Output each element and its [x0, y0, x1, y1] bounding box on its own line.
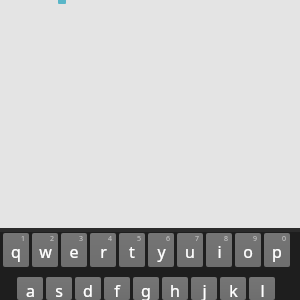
button[interactable]: 1	[3, 233, 29, 267]
staticText: 7	[195, 234, 200, 244]
staticText: 1	[21, 234, 26, 244]
staticText: 6	[166, 234, 171, 244]
staticText: 4	[108, 234, 113, 244]
staticText: 5	[137, 234, 142, 244]
button[interactable]: l	[249, 277, 275, 300]
staticText: u	[185, 241, 195, 263]
staticText: 3	[79, 234, 84, 244]
staticText: o	[243, 241, 253, 263]
button[interactable]: 4	[90, 233, 116, 267]
staticText: j	[202, 280, 207, 300]
staticText: i	[217, 241, 222, 263]
button[interactable]: 6	[148, 233, 174, 267]
staticText: s	[55, 280, 63, 300]
staticText: y	[157, 241, 166, 263]
staticText: f	[114, 280, 120, 300]
staticText: q	[11, 241, 21, 263]
button[interactable]: 7	[177, 233, 203, 267]
button[interactable]: 9	[235, 233, 261, 267]
button[interactable]: 3	[61, 233, 87, 267]
button[interactable]: j	[191, 277, 217, 300]
staticText: l	[260, 280, 265, 300]
button[interactable]: 2	[32, 233, 58, 267]
button[interactable]: k	[220, 277, 246, 300]
staticText: r	[100, 241, 107, 263]
button[interactable]: 5	[119, 233, 145, 267]
button[interactable]: a	[17, 277, 43, 300]
button[interactable]: s	[46, 277, 72, 300]
button[interactable]: g	[133, 277, 159, 300]
button[interactable]: h	[162, 277, 188, 300]
button[interactable]: f	[104, 277, 130, 300]
staticText: a	[26, 280, 35, 300]
staticText: 2	[50, 234, 55, 244]
button[interactable]: d	[75, 277, 101, 300]
staticText: h	[170, 280, 180, 300]
button[interactable]: 0	[264, 233, 290, 267]
button[interactable]: 8	[206, 233, 232, 267]
staticText: e	[69, 241, 79, 263]
staticText: g	[141, 280, 151, 300]
staticText: w	[39, 241, 52, 263]
staticText: d	[83, 280, 93, 300]
staticText: t	[129, 241, 135, 263]
staticText: p	[272, 241, 282, 263]
staticText: k	[229, 280, 238, 300]
staticText: 9	[253, 234, 258, 244]
staticText: 0	[282, 234, 287, 244]
staticText: 8	[224, 234, 229, 244]
